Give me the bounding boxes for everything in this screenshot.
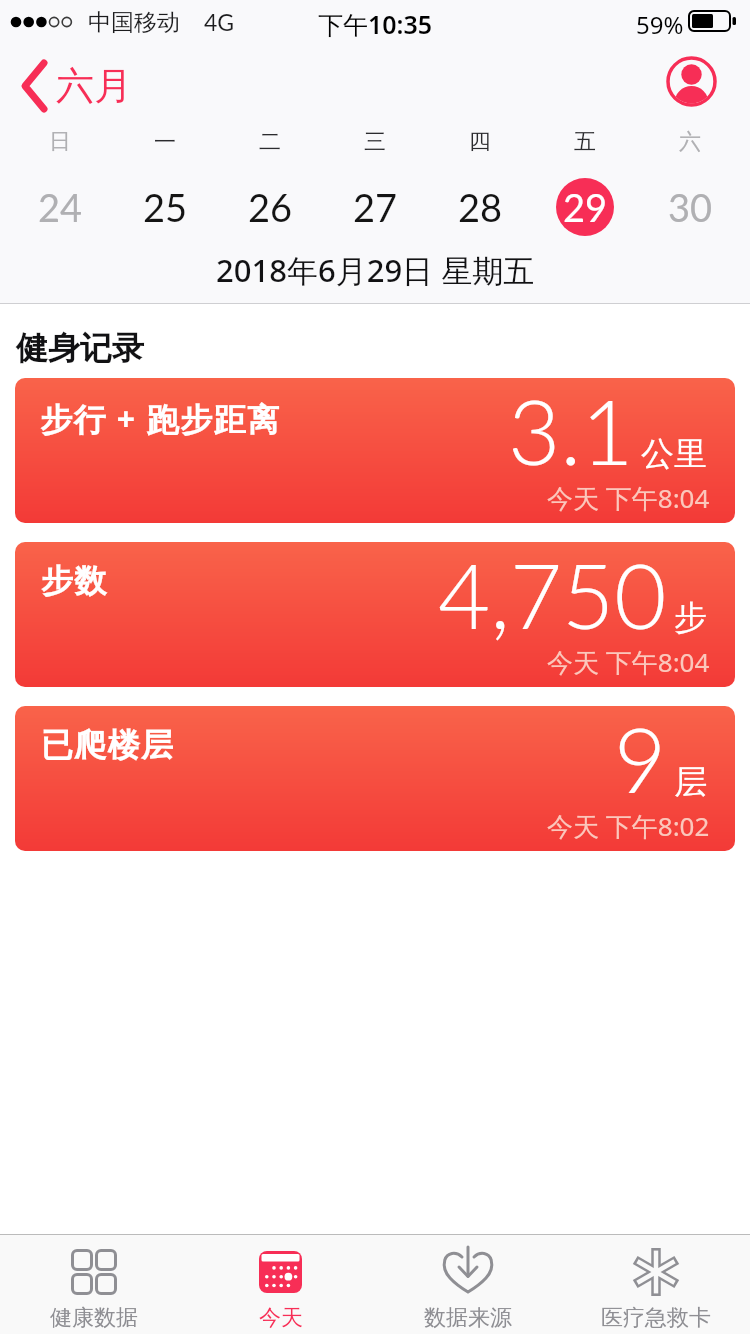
staticText: 数据来源 <box>424 1304 512 1332</box>
staticText: 今天 下午8:04 <box>547 480 710 516</box>
staticText: 四 <box>469 128 491 156</box>
staticText: 28 <box>458 184 503 230</box>
staticText: 健康数据 <box>50 1304 138 1332</box>
button[interactable]: 步行 + 跑步距离 <box>15 378 735 523</box>
staticText: 4G <box>204 8 235 36</box>
staticText: 今天 下午8:04 <box>547 644 710 680</box>
staticText: 已爬楼层 <box>40 725 174 765</box>
button[interactable]: 六月 <box>10 52 140 120</box>
staticText: 59% <box>636 8 684 41</box>
button[interactable]: 26 <box>241 178 299 236</box>
staticText: 27 <box>353 184 398 230</box>
staticText: 六 <box>679 128 701 156</box>
staticText: 3.1 <box>508 378 634 484</box>
staticText: 今天 <box>259 1304 303 1332</box>
button[interactable]: 25 <box>136 178 194 236</box>
staticText: 三 <box>364 128 386 156</box>
button[interactable]: 29 <box>556 178 614 236</box>
button[interactable]: 步数 <box>15 542 735 687</box>
button[interactable]: 已爬楼层 <box>15 706 735 851</box>
staticText: 4,750 <box>438 542 667 648</box>
staticText: 步 <box>674 597 707 639</box>
staticText: 中国移动 <box>88 8 180 37</box>
staticText: 公里 <box>641 433 707 475</box>
staticText: 9 <box>614 706 667 812</box>
staticText: 步行 + 跑步距离 <box>40 397 281 441</box>
staticText: 30 <box>668 184 713 230</box>
staticText: 健身记录 <box>16 328 144 368</box>
button[interactable]: 28 <box>451 178 509 236</box>
staticText: 层 <box>674 761 707 803</box>
button[interactable]: 27 <box>346 178 404 236</box>
staticText: 二 <box>259 128 281 156</box>
button[interactable]: 数据来源 <box>374 1234 562 1334</box>
staticText: 24 <box>38 184 83 230</box>
staticText: 2018年6月29日 星期五 <box>216 249 535 291</box>
button[interactable] <box>666 56 718 108</box>
staticText: 29 <box>563 184 608 230</box>
button[interactable]: 医疗急救卡 <box>562 1234 750 1334</box>
button[interactable]: 24 <box>31 178 89 236</box>
staticText: 五 <box>574 128 596 156</box>
staticText: 今天 下午8:02 <box>547 808 710 844</box>
staticText: 步数 <box>40 561 107 601</box>
button[interactable]: 30 <box>661 178 719 236</box>
staticText: 下午10:35 <box>318 7 433 41</box>
button[interactable]: 今天 <box>187 1234 374 1334</box>
staticText: 26 <box>248 184 293 230</box>
staticText: 一 <box>154 128 176 156</box>
staticText: 医疗急救卡 <box>601 1304 711 1332</box>
staticText: 日 <box>49 128 71 156</box>
button[interactable]: 健康数据 <box>0 1234 187 1334</box>
staticText: 25 <box>143 184 188 230</box>
staticText: 六月 <box>56 62 132 110</box>
